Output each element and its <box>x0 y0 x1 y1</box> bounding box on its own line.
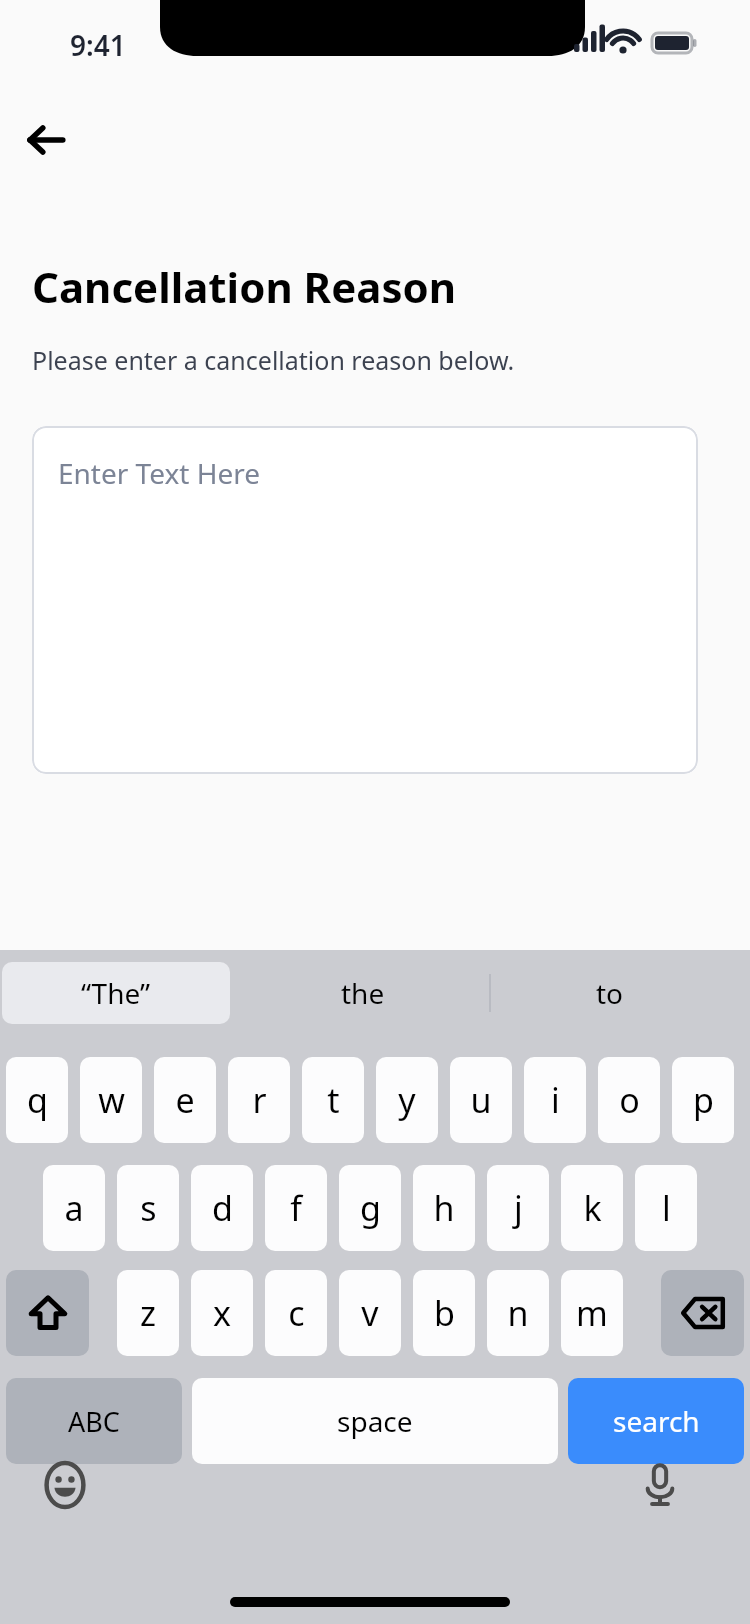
button[interactable]: ABC <box>6 1378 182 1464</box>
button[interactable]: k <box>561 1165 623 1251</box>
staticText: g <box>360 1185 381 1231</box>
button[interactable]: h <box>413 1165 475 1251</box>
button[interactable]: m <box>561 1270 623 1356</box>
staticText: “The” <box>81 974 151 1012</box>
button[interactable]: Backspace <box>661 1270 744 1356</box>
staticText: d <box>212 1185 233 1231</box>
staticText: u <box>470 1077 492 1123</box>
button[interactable]: x <box>191 1270 253 1356</box>
staticText: p <box>693 1077 714 1123</box>
staticText: the <box>341 974 385 1012</box>
button[interactable]: Back <box>16 110 76 170</box>
button[interactable]: s <box>117 1165 179 1251</box>
staticText: c <box>288 1290 305 1336</box>
staticText: v <box>361 1290 379 1336</box>
button[interactable]: r <box>228 1057 290 1143</box>
button[interactable]: y <box>376 1057 438 1143</box>
staticText: to <box>596 974 624 1012</box>
button[interactable]: a <box>43 1165 105 1251</box>
button[interactable]: b <box>413 1270 475 1356</box>
button[interactable]: i <box>524 1057 586 1143</box>
button[interactable]: n <box>487 1270 549 1356</box>
staticText: search <box>613 1402 700 1440</box>
staticText: s <box>140 1185 157 1231</box>
staticText: j <box>514 1185 523 1231</box>
staticText: space <box>337 1402 413 1440</box>
staticText: 9:41 <box>70 26 126 64</box>
button[interactable]: g <box>339 1165 401 1251</box>
staticText: e <box>175 1077 195 1123</box>
button[interactable]: w <box>80 1057 142 1143</box>
button[interactable]: Dictation <box>625 1450 695 1520</box>
staticText: m <box>576 1290 608 1336</box>
staticText: Cancellation Reason <box>32 258 457 315</box>
staticText: Please enter a cancellation reason below… <box>32 343 515 377</box>
button[interactable]: o <box>598 1057 660 1143</box>
button[interactable]: p <box>672 1057 734 1143</box>
staticText: q <box>27 1077 48 1123</box>
staticText: r <box>252 1077 267 1123</box>
button[interactable]: search <box>568 1378 744 1464</box>
staticText: o <box>619 1077 640 1123</box>
staticText: i <box>551 1077 560 1123</box>
button[interactable]: l <box>635 1165 697 1251</box>
button[interactable]: space <box>192 1378 558 1464</box>
staticText: Enter Text Here <box>58 454 260 492</box>
button[interactable]: f <box>265 1165 327 1251</box>
button[interactable]: d <box>191 1165 253 1251</box>
button[interactable]: j <box>487 1165 549 1251</box>
button[interactable]: Emoji <box>30 1450 100 1520</box>
button[interactable]: Shift <box>6 1270 89 1356</box>
staticText: w <box>98 1077 125 1123</box>
staticText: n <box>507 1290 529 1336</box>
staticText: x <box>213 1290 231 1336</box>
button[interactable]: v <box>339 1270 401 1356</box>
button[interactable]: t <box>302 1057 364 1143</box>
button[interactable]: to <box>500 962 720 1024</box>
staticText: ABC <box>68 1403 120 1440</box>
staticText: h <box>433 1185 455 1231</box>
button[interactable]: the <box>245 962 480 1024</box>
button[interactable]: q <box>6 1057 68 1143</box>
staticText: a <box>64 1185 84 1231</box>
button[interactable]: e <box>154 1057 216 1143</box>
staticText: k <box>583 1185 602 1231</box>
staticText: l <box>662 1185 671 1231</box>
button[interactable]: u <box>450 1057 512 1143</box>
button[interactable]: Enter Text Here <box>32 426 698 774</box>
staticText: t <box>327 1077 340 1123</box>
staticText: b <box>434 1290 455 1336</box>
button[interactable]: c <box>265 1270 327 1356</box>
staticText: z <box>140 1290 156 1336</box>
button[interactable]: “The” <box>2 962 230 1024</box>
staticText: y <box>398 1077 416 1123</box>
button[interactable]: z <box>117 1270 179 1356</box>
staticText: f <box>290 1185 302 1231</box>
